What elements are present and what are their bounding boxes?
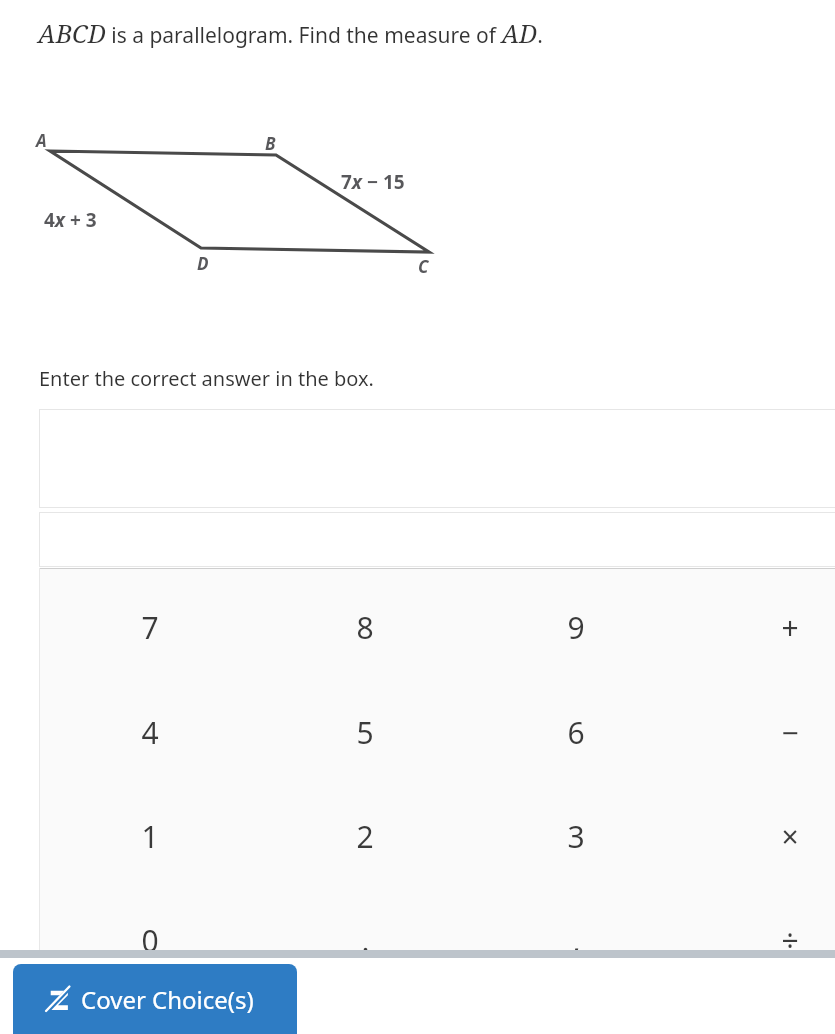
button[interactable]: 4 xyxy=(60,682,240,782)
staticText: Enter the correct answer in the box. xyxy=(39,365,374,392)
button[interactable]: ÷ xyxy=(700,890,835,990)
button[interactable]: 3 xyxy=(486,786,666,886)
button[interactable]: , xyxy=(486,890,666,990)
staticText: 3 xyxy=(567,816,585,857)
button[interactable] xyxy=(39,409,835,508)
other: Cover Choices xyxy=(45,986,71,1012)
staticText: Cover Choice(s) xyxy=(81,983,254,1016)
staticText: D xyxy=(197,252,209,275)
button[interactable]: . xyxy=(275,890,455,990)
staticText: 4 xyxy=(141,712,159,753)
staticText: 7x − 15 xyxy=(341,169,405,195)
button[interactable]: 1 xyxy=(60,786,240,886)
button[interactable]: − xyxy=(700,682,835,782)
staticText: + xyxy=(781,607,799,648)
staticText: B xyxy=(265,132,276,155)
staticText: A xyxy=(36,129,47,152)
staticText: ABCD is a parallelogram. Find the measur… xyxy=(38,16,543,50)
staticText: 4x + 3 xyxy=(44,207,97,233)
staticText: ÷ xyxy=(781,920,799,961)
button[interactable]: 6 xyxy=(486,682,666,782)
staticText: − xyxy=(781,712,799,753)
staticText: . xyxy=(361,920,370,961)
staticText: 7 xyxy=(141,607,159,648)
button[interactable]: 7 xyxy=(60,577,240,677)
button[interactable] xyxy=(39,512,835,567)
staticText: 0 xyxy=(141,920,159,961)
button[interactable]: Cover Choices xyxy=(13,964,297,1034)
staticText: , xyxy=(572,920,581,961)
staticText: 8 xyxy=(356,607,374,648)
staticText: 9 xyxy=(567,607,585,648)
button[interactable]: × xyxy=(700,786,835,886)
staticText: 1 xyxy=(141,816,159,857)
button[interactable]: + xyxy=(700,577,835,677)
button[interactable]: 2 xyxy=(275,786,455,886)
staticText: 6 xyxy=(567,712,585,753)
button[interactable]: 0 xyxy=(60,890,240,990)
staticText: 2 xyxy=(356,816,374,857)
button[interactable]: 8 xyxy=(275,577,455,677)
button[interactable]: 9 xyxy=(486,577,666,677)
button[interactable]: 5 xyxy=(275,682,455,782)
staticText: 5 xyxy=(356,712,374,753)
staticText: × xyxy=(781,816,799,857)
staticText: C xyxy=(418,255,429,278)
